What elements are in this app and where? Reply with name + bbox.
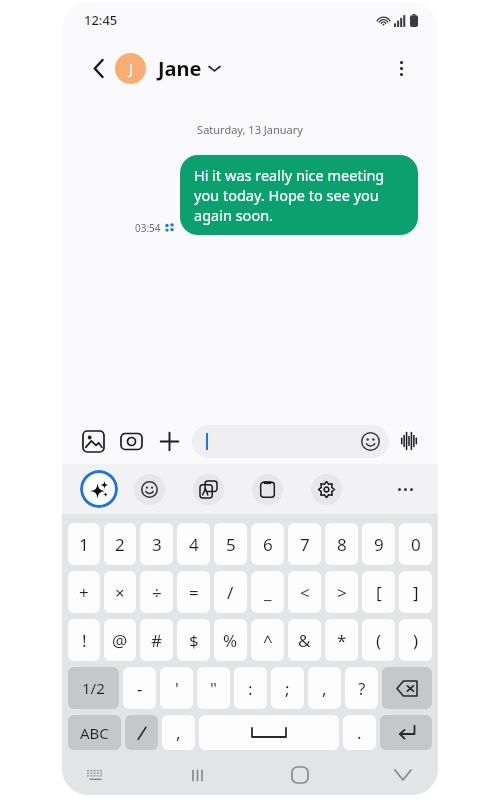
button[interactable]: . <box>343 715 376 750</box>
button[interactable]: Voice message <box>398 430 420 452</box>
button[interactable]: Emoji <box>361 432 380 451</box>
staticText: " <box>210 677 217 700</box>
button[interactable]: Hide keyboard <box>82 762 108 788</box>
staticText: ? <box>358 677 366 700</box>
button[interactable]: & <box>288 619 321 661</box>
staticText: > <box>337 581 347 604</box>
button[interactable]: ÷ <box>140 571 173 613</box>
staticText: ^ <box>263 629 273 652</box>
button[interactable]: : <box>234 667 267 709</box>
staticText: [ <box>376 581 382 604</box>
button[interactable]: ) <box>399 619 432 661</box>
button[interactable]: # <box>140 619 173 661</box>
button[interactable]: Emoji <box>134 474 165 505</box>
staticText: ) <box>413 629 419 652</box>
button[interactable]: × <box>104 571 136 613</box>
button[interactable]: Back <box>82 51 116 85</box>
button[interactable]: , <box>308 667 341 709</box>
button[interactable]: = <box>177 571 210 613</box>
staticText: / <box>227 581 234 604</box>
staticText: : <box>248 677 253 700</box>
button[interactable]: 1 <box>68 523 100 565</box>
staticText: 6 <box>263 533 273 556</box>
staticText: Saturday, 13 January <box>62 122 438 137</box>
staticText: 0 <box>411 533 421 556</box>
button[interactable]: Back <box>388 760 418 790</box>
button[interactable]: ] <box>399 571 432 613</box>
button[interactable]: > <box>325 571 358 613</box>
button[interactable]: Home <box>285 760 315 790</box>
button[interactable]: 8 <box>325 523 358 565</box>
button[interactable]: Emoji <box>192 425 389 458</box>
staticText: 1 <box>79 533 89 556</box>
staticText: & <box>298 629 311 652</box>
button[interactable]: 4 <box>177 523 210 565</box>
button[interactable]: + <box>68 571 100 613</box>
staticText: 3 <box>152 533 162 556</box>
button[interactable]: 3 <box>140 523 173 565</box>
staticText: . <box>357 721 362 744</box>
button[interactable]: ? <box>345 667 378 709</box>
button[interactable]: _ <box>251 571 284 613</box>
staticText: ÷ <box>152 581 162 604</box>
staticText: , <box>322 677 327 700</box>
staticText: % <box>223 629 238 652</box>
button[interactable]: 6 <box>251 523 284 565</box>
button[interactable]: [ <box>362 571 395 613</box>
button[interactable]: 7 <box>288 523 321 565</box>
button[interactable]: " <box>197 667 230 709</box>
staticText: @ <box>112 629 128 652</box>
button[interactable]: Add attachment <box>156 428 182 454</box>
staticText: 1/2 <box>82 678 105 698</box>
button[interactable]: AI assist <box>80 470 118 508</box>
button[interactable]: 1/2 <box>68 667 119 709</box>
staticText: ! <box>82 629 87 652</box>
staticText: 9 <box>374 533 384 556</box>
staticText: * <box>337 629 347 652</box>
button[interactable]: Recents <box>182 760 212 790</box>
button[interactable]: $ <box>177 619 210 661</box>
button[interactable]: ABC <box>68 715 121 750</box>
button[interactable]: Gallery <box>80 428 106 454</box>
button[interactable]: Translate <box>193 474 224 505</box>
button[interactable]: * <box>325 619 358 661</box>
button[interactable]: Hi it was really nice meeting you today.… <box>180 155 418 235</box>
button[interactable]: Space <box>199 715 339 750</box>
button[interactable]: Settings <box>311 474 342 505</box>
button[interactable]: Language <box>125 715 158 750</box>
staticText: 12:45 <box>84 11 118 29</box>
button[interactable]: % <box>214 619 247 661</box>
button[interactable]: J <box>115 53 220 84</box>
staticText: , <box>176 721 181 744</box>
staticText: # <box>151 629 162 652</box>
staticText: 7 <box>300 533 310 556</box>
button[interactable]: Enter <box>380 715 432 750</box>
staticText: Jane <box>158 55 202 82</box>
button[interactable]: ' <box>160 667 193 709</box>
staticText: = <box>189 581 199 604</box>
button[interactable]: / <box>214 571 247 613</box>
staticText: 2 <box>115 533 125 556</box>
staticText: 5 <box>226 533 236 556</box>
button[interactable]: 2 <box>104 523 136 565</box>
button[interactable]: Backspace <box>382 667 432 709</box>
staticText: 03:54 <box>135 221 161 235</box>
button[interactable]: - <box>123 667 156 709</box>
staticText: × <box>115 581 125 604</box>
button[interactable]: 5 <box>214 523 247 565</box>
button[interactable]: Clipboard <box>252 474 283 505</box>
button[interactable]: More <box>390 474 420 504</box>
staticText: _ <box>264 581 272 604</box>
staticText: < <box>300 581 310 604</box>
button[interactable]: ^ <box>251 619 284 661</box>
button[interactable]: More options <box>384 51 418 85</box>
button[interactable]: ( <box>362 619 395 661</box>
button[interactable]: Camera <box>118 428 144 454</box>
button[interactable]: < <box>288 571 321 613</box>
button[interactable]: @ <box>104 619 136 661</box>
button[interactable]: 9 <box>362 523 395 565</box>
button[interactable]: ! <box>68 619 100 661</box>
button[interactable]: ; <box>271 667 304 709</box>
button[interactable]: , <box>162 715 195 750</box>
button[interactable]: 0 <box>399 523 432 565</box>
